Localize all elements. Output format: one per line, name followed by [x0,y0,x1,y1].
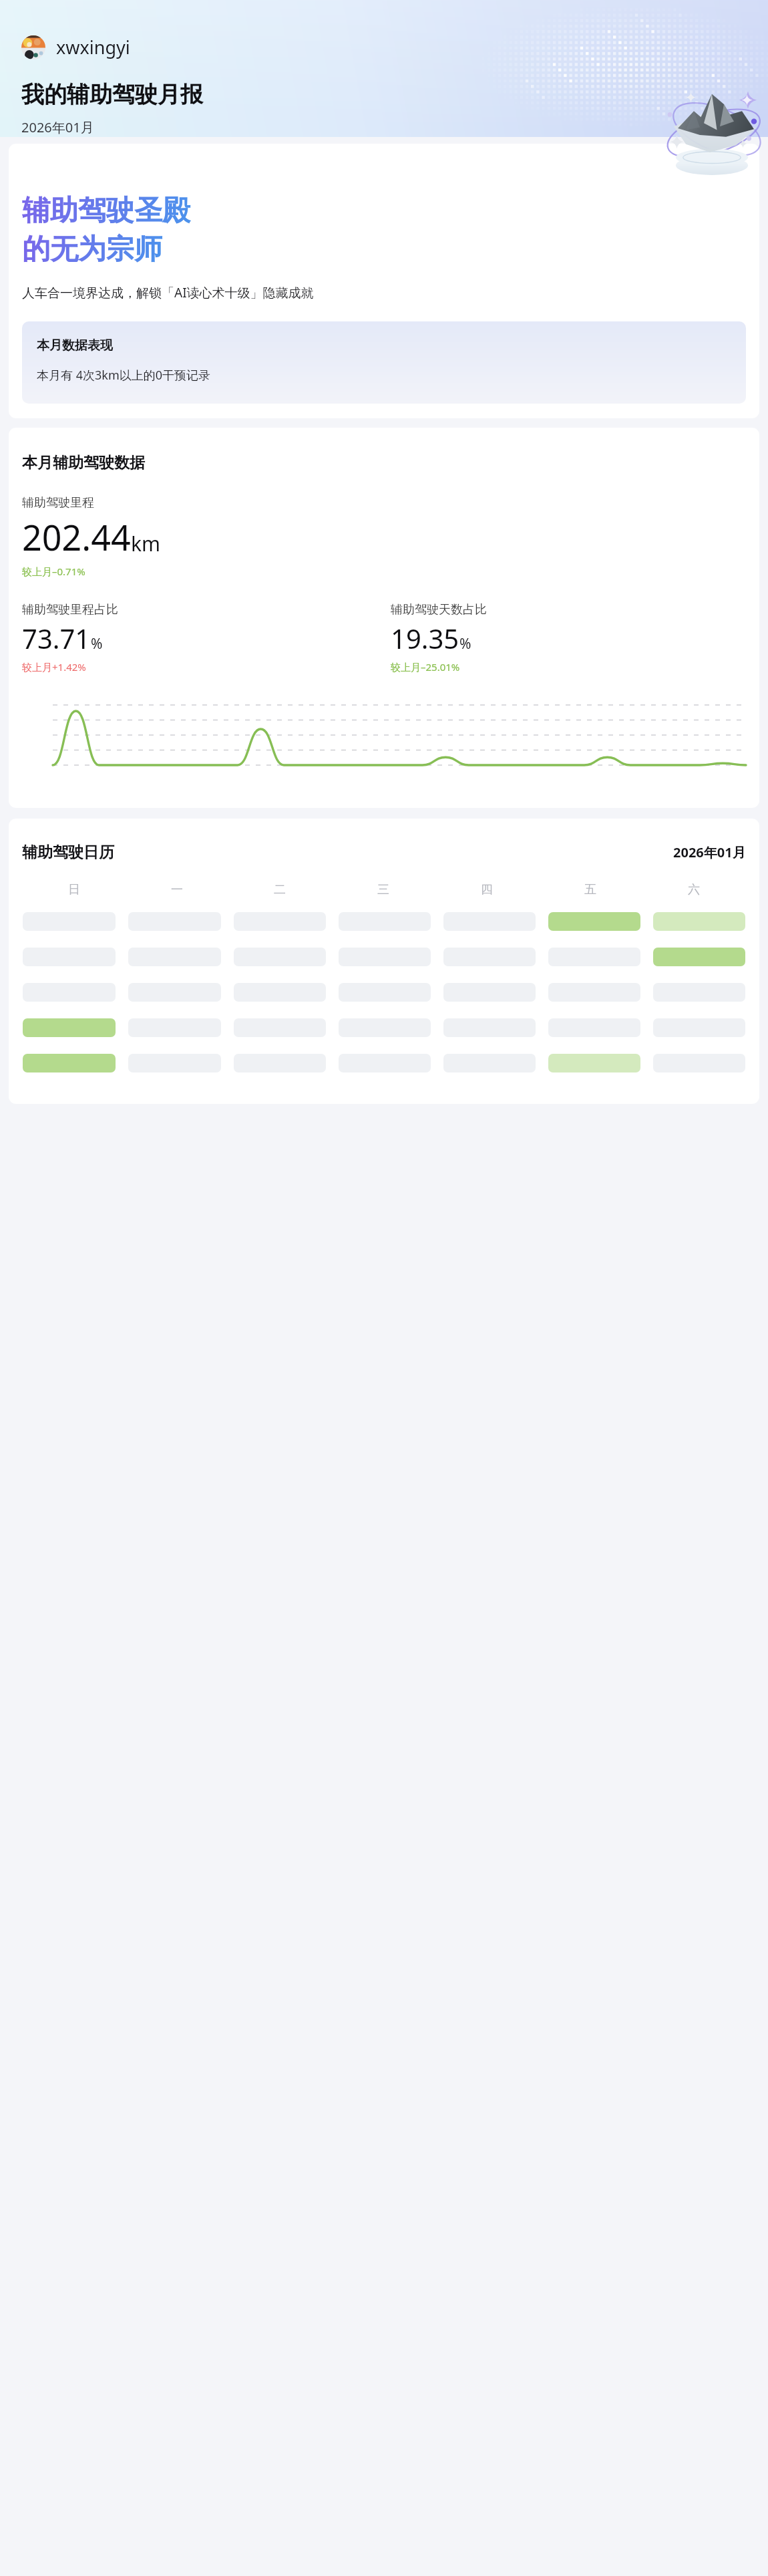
button[interactable] [548,1018,640,1037]
staticText: 三 [377,882,389,897]
staticText: 本月辅助驾驶数据 [22,453,145,472]
staticText: 19.35 [391,620,459,656]
button[interactable] [548,912,640,931]
button[interactable]: Profile avatar [21,35,45,59]
button[interactable] [653,948,745,966]
button[interactable]: 辅助驾驶里程占比 [22,602,391,674]
button[interactable] [339,912,431,931]
staticText: % [91,634,103,654]
staticText: 辅助驾驶天数占比 [391,602,487,617]
staticText: 的无为宗师 [22,232,162,267]
staticText: 辅助驾驶圣殿 [22,193,190,229]
staticText: 日 [68,882,80,897]
staticText: 辅助驾驶日历 [22,843,114,862]
button[interactable]: 辅助驾驶圣殿 [9,144,759,418]
button[interactable] [128,912,221,931]
staticText: 我的辅助驾驶月报 [21,80,203,109]
staticText: 本月数据表现 [37,337,113,353]
staticText: 较上月–0.71% [22,565,85,578]
button[interactable] [23,1054,116,1072]
button[interactable] [128,1018,221,1037]
button[interactable] [234,1018,326,1037]
staticText: 一 [171,882,183,897]
staticText: 辅助驾驶里程 [22,495,94,511]
staticText: 六 [688,882,700,897]
button[interactable] [653,1018,745,1037]
staticText: 较上月+1.42% [22,660,86,674]
button[interactable]: 辅助驾驶日历 [9,819,759,1104]
button[interactable] [339,1018,431,1037]
staticText: 2026年01月 [21,118,94,136]
button[interactable] [23,912,116,931]
button[interactable] [653,912,745,931]
staticText: 本月有 4次3km以上的0干预记录 [37,367,211,384]
staticText: 2026年01月 [673,843,746,861]
staticText: 二 [274,882,286,897]
staticText: % [459,634,471,654]
button[interactable] [23,1018,116,1037]
staticText: 202.44 [22,513,131,561]
staticText: 五 [584,882,596,897]
button[interactable]: 本月数据表现 [22,321,746,404]
button[interactable]: 辅助驾驶天数占比 [391,602,759,674]
button[interactable] [548,1054,640,1072]
button[interactable]: 本月辅助驾驶数据 [9,428,759,808]
staticText: km [131,530,161,557]
button[interactable] [443,1018,536,1037]
staticText: 辅助驾驶里程占比 [22,602,118,617]
button[interactable] [443,912,536,931]
staticText: xwxingyi [56,35,130,59]
staticText: 四 [481,882,493,897]
staticText: 73.71 [22,620,91,656]
staticText: 人车合一境界达成，解锁「AI读心术十级」隐藏成就 [22,284,314,301]
button[interactable]: Profile avatar [21,35,130,59]
button[interactable] [234,912,326,931]
staticText: 较上月–25.01% [391,660,460,674]
